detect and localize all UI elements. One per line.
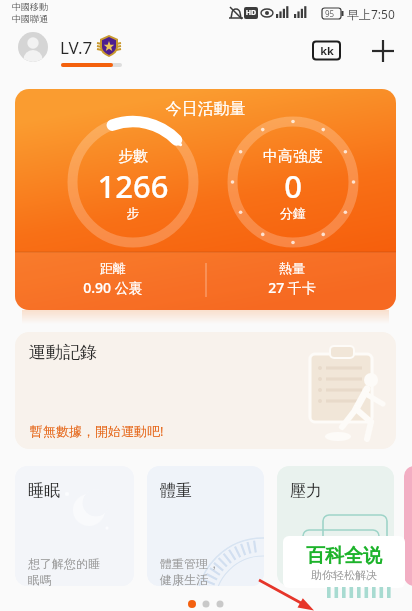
staticText: 熱量 (232, 260, 352, 276)
staticText: 距離 (53, 260, 173, 276)
button[interactable]: 運動記錄 (15, 332, 396, 449)
staticText: 步 (53, 205, 213, 221)
staticText: 1266 (53, 165, 213, 207)
staticText: kk (311, 43, 343, 58)
button[interactable]: 今日活動量 (15, 89, 396, 310)
staticText: 95 (325, 8, 335, 19)
staticText: 百科全说 (283, 544, 405, 568)
staticText: LV.7 (60, 36, 93, 59)
staticText: 助你轻松解决 (283, 568, 405, 582)
button[interactable]: 睡眠 (15, 466, 134, 586)
staticText: 今日活動量 (15, 99, 396, 119)
staticText: 體重管理，健康生活 (160, 556, 224, 586)
button[interactable]: 體重 (147, 466, 264, 586)
staticText: 0.90 公裏 (53, 278, 173, 297)
staticText: 分鐘 (213, 205, 373, 221)
staticText: HD (244, 8, 258, 18)
staticText: 中高強度 (213, 147, 373, 166)
staticText: 運動記錄 (29, 342, 97, 363)
button[interactable]: kk (311, 40, 343, 61)
staticText: 步數 (53, 147, 213, 166)
button[interactable] (18, 32, 48, 62)
staticText: 暫無數據，開始運動吧! (30, 422, 164, 440)
staticText: 早上7:50 (347, 6, 395, 22)
staticText: 壓力 (290, 481, 322, 501)
staticText: 27 千卡 (232, 278, 352, 297)
staticText: 中國移動 (12, 1, 48, 12)
staticText: 體重 (160, 481, 192, 501)
staticText: 睡眠 (28, 481, 60, 501)
button[interactable]: 壓力 (277, 466, 394, 586)
staticText: 想了解您的睡眠嗎 (28, 556, 106, 586)
staticText: 中國聯通 (12, 13, 48, 24)
button[interactable] (370, 38, 396, 64)
staticText: 0 (213, 165, 373, 207)
